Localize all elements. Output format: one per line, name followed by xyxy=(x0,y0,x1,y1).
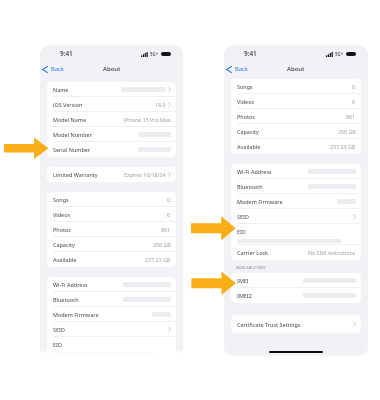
staticText: 861 xyxy=(161,226,171,233)
staticText: IMEI xyxy=(237,277,249,284)
button[interactable]: Modem Firmware xyxy=(47,307,176,322)
staticText: Name xyxy=(53,86,69,93)
staticText: Songs xyxy=(237,83,253,90)
staticText: Videos xyxy=(237,98,255,105)
button[interactable]: Bluetooth xyxy=(231,179,361,194)
button[interactable]: IMEI xyxy=(231,273,361,288)
staticText: Modem Firmware xyxy=(53,311,99,318)
staticText: AVAILABLE SIMS xyxy=(236,265,266,270)
button[interactable]: Photos xyxy=(231,109,361,124)
staticText: 9:41 xyxy=(244,49,257,58)
button[interactable]: Songs xyxy=(231,79,361,94)
staticText: iPhone 15 Pro Max xyxy=(124,116,171,123)
button[interactable]: Videos xyxy=(47,207,176,222)
staticText: 237.23 GB xyxy=(145,256,171,263)
button[interactable]: Capacity xyxy=(47,237,176,252)
staticText: Back xyxy=(51,65,64,73)
button[interactable]: Songs xyxy=(47,192,176,207)
button[interactable]: Available xyxy=(231,139,361,154)
button[interactable]: iOS Version xyxy=(47,97,176,112)
staticText: No SIM restrictions xyxy=(308,249,356,256)
staticText: About xyxy=(103,65,121,73)
staticText: 256 GB xyxy=(153,241,171,248)
button[interactable]: EID xyxy=(47,337,176,352)
staticText: 0 xyxy=(167,196,171,203)
staticText: Wi-Fi Address xyxy=(237,168,272,175)
staticText: Photos xyxy=(237,113,255,120)
staticText: Bluetooth xyxy=(237,183,263,190)
staticText: Photos xyxy=(53,226,71,233)
button[interactable]: Bluetooth xyxy=(47,292,176,307)
staticText: Capacity xyxy=(237,128,259,135)
button[interactable]: Photos xyxy=(47,222,176,237)
staticText: 0 xyxy=(352,83,356,90)
staticText: Serial Number xyxy=(53,146,91,153)
button[interactable]: Available xyxy=(47,252,176,267)
other: Back xyxy=(226,66,232,73)
button[interactable]: Back xyxy=(226,65,248,73)
staticText: SEID xyxy=(53,326,65,333)
button[interactable]: Modem Firmware xyxy=(231,194,361,209)
staticText: 237.23 GB xyxy=(330,143,356,150)
staticText: IMEI2 xyxy=(237,292,252,299)
staticText: Songs xyxy=(53,196,69,203)
staticText: 256 GB xyxy=(338,128,356,135)
staticText: Available xyxy=(53,256,77,263)
staticText: 18.0 xyxy=(155,101,166,108)
staticText: Available xyxy=(237,143,261,150)
button[interactable]: Name xyxy=(47,82,176,97)
button[interactable]: Certificate Trust Settings xyxy=(231,315,361,333)
staticText: iOS Version xyxy=(53,101,83,108)
button[interactable]: Wi-Fi Address xyxy=(47,277,176,292)
staticText: EID xyxy=(53,341,62,348)
button[interactable]: Wi-Fi Address xyxy=(231,164,361,179)
button[interactable]: SEID xyxy=(47,322,176,337)
staticText: Videos xyxy=(53,211,71,218)
staticText: EID xyxy=(237,228,246,235)
button[interactable]: Model Number xyxy=(47,127,176,142)
button[interactable]: IMEI2 xyxy=(231,288,361,303)
staticText: Model Name xyxy=(53,116,87,123)
staticText: 6 xyxy=(167,211,171,218)
staticText: Capacity xyxy=(53,241,75,248)
button[interactable]: Serial Number xyxy=(47,142,176,157)
staticText: Model Number xyxy=(53,131,92,138)
staticText: Expires 10/18/24 xyxy=(124,171,166,178)
button[interactable]: Back xyxy=(42,65,64,73)
staticText: Limited Warranty xyxy=(53,171,98,178)
staticText: Carrier Lock xyxy=(237,249,269,256)
staticText: Wi-Fi Address xyxy=(53,281,88,288)
button[interactable]: Model Name xyxy=(47,112,176,127)
staticText: About xyxy=(287,65,305,73)
button[interactable]: EID xyxy=(231,224,361,239)
staticText: 861 xyxy=(346,113,356,120)
button[interactable]: Limited Warranty xyxy=(47,167,176,182)
staticText: Bluetooth xyxy=(53,296,79,303)
staticText: 6 xyxy=(352,98,356,105)
staticText: SEID xyxy=(237,213,249,220)
button[interactable]: Carrier Lock xyxy=(231,245,361,260)
button[interactable]: SEID xyxy=(231,209,361,224)
button[interactable]: Videos xyxy=(231,94,361,109)
staticText: 9:41 xyxy=(60,49,73,58)
staticText: Certificate Trust Settings xyxy=(237,321,301,328)
staticText: 5G+ xyxy=(335,51,344,57)
button[interactable]: Capacity xyxy=(231,124,361,139)
other: Back xyxy=(42,66,48,73)
staticText: 5G+ xyxy=(150,51,159,57)
staticText: Modem Firmware xyxy=(237,198,283,205)
staticText: Back xyxy=(235,65,248,73)
